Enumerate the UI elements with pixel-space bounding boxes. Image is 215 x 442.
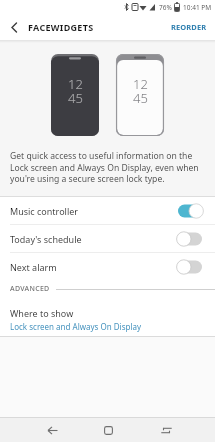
staticText: FACEWIDGETS — [28, 21, 94, 33]
button[interactable] — [152, 418, 180, 442]
staticText: Today's schedule — [10, 233, 82, 245]
staticText: Next alarm — [10, 261, 57, 273]
staticText: Lock screen and Always On Display — [10, 321, 142, 332]
button[interactable]: REORDER — [163, 14, 215, 40]
button[interactable] — [178, 203, 206, 219]
staticText: Music controller — [10, 205, 79, 217]
staticText: ADVANCED — [10, 284, 50, 294]
button[interactable]: Today's schedule — [0, 225, 215, 252]
button[interactable]: Music controller — [0, 197, 215, 224]
button[interactable]: Next alarm — [0, 253, 215, 280]
button[interactable] — [0, 14, 28, 40]
button[interactable] — [178, 231, 206, 247]
staticText: REORDER — [171, 22, 207, 32]
button[interactable] — [38, 418, 66, 442]
staticText: 10:41 PM — [183, 3, 212, 12]
staticText: 12 45 — [133, 75, 148, 107]
staticText: Get quick access to useful information o… — [10, 150, 199, 184]
button[interactable]: Where to show — [0, 298, 215, 336]
button[interactable] — [178, 259, 206, 275]
staticText: 76% — [159, 3, 172, 12]
staticText: Where to show — [10, 307, 74, 319]
staticText: 12 45 — [68, 75, 83, 107]
button[interactable] — [94, 418, 122, 442]
